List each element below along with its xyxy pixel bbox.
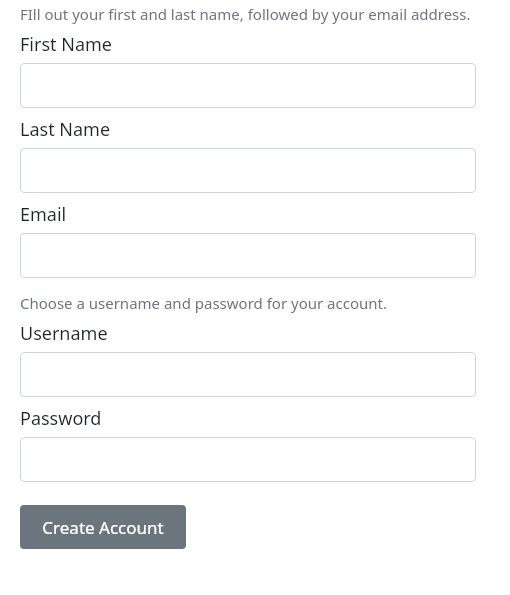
staticText: Password xyxy=(20,406,102,431)
staticText: Email xyxy=(20,202,67,227)
button[interactable] xyxy=(20,352,476,397)
staticText: Create Account xyxy=(42,516,164,539)
button[interactable] xyxy=(20,233,476,278)
button[interactable] xyxy=(20,437,476,482)
staticText: First Name xyxy=(20,32,112,57)
staticText: Choose a username and password for your … xyxy=(20,293,387,313)
staticText: Last Name xyxy=(20,117,111,142)
staticText: FIll out your first and last name, follo… xyxy=(20,4,471,24)
staticText: Username xyxy=(20,321,108,346)
button[interactable] xyxy=(20,63,476,108)
button[interactable] xyxy=(20,148,476,193)
button[interactable]: Create Account xyxy=(20,505,186,549)
